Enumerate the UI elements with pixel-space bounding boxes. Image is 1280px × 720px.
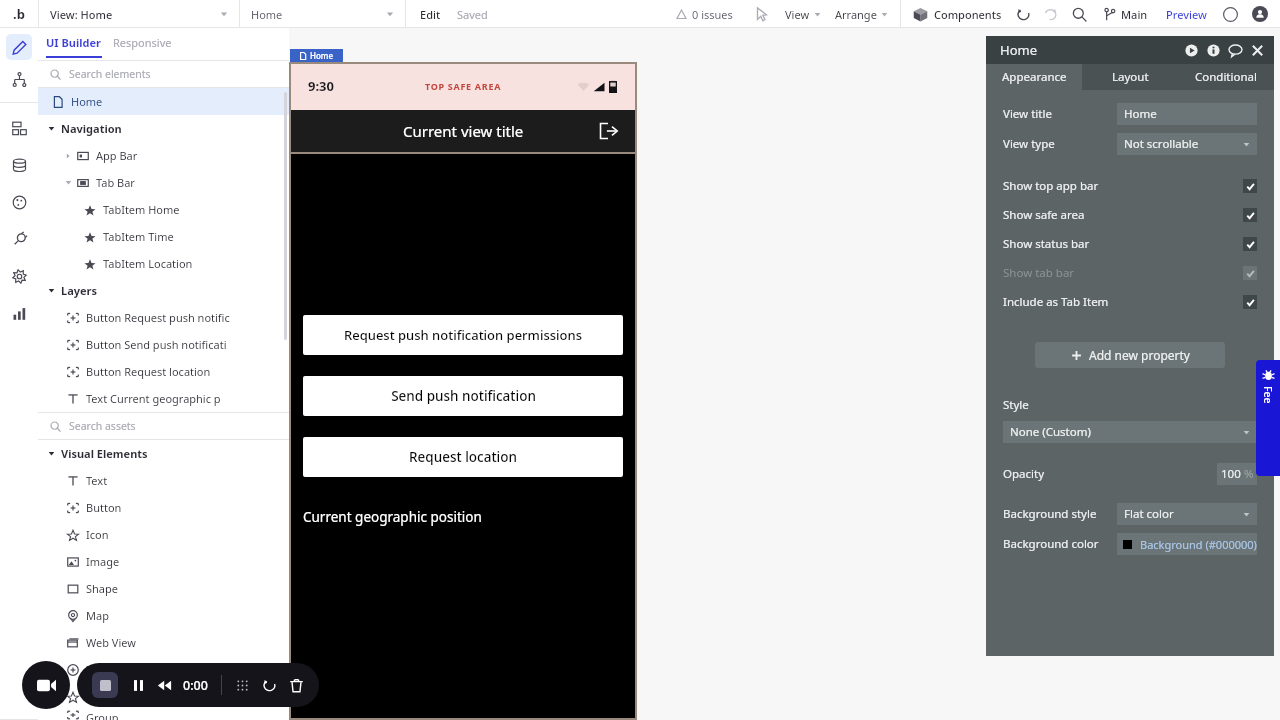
button[interactable]: TabItem Home: [38, 196, 289, 223]
button[interactable]: Responsive: [113, 35, 172, 50]
staticText: Flat color: [1124, 506, 1174, 522]
button[interactable]: Tool: [6, 263, 32, 289]
button[interactable]: None (Custom): [1003, 421, 1257, 443]
button[interactable]: Button Send push notificati: [38, 331, 289, 358]
button[interactable]: TabItem Time: [38, 223, 289, 250]
staticText: TabItem Location: [103, 256, 193, 271]
button[interactable]: 100: [1217, 463, 1257, 485]
button[interactable]: Conditional: [1178, 64, 1274, 90]
button[interactable]: Home: [290, 49, 343, 62]
button[interactable]: Icon: [38, 521, 289, 548]
button[interactable]: View: Home: [39, 0, 239, 28]
button[interactable]: 0 issues: [676, 7, 733, 22]
button[interactable]: Button: [38, 494, 289, 521]
staticText: Home: [71, 94, 103, 109]
button[interactable]: Preview: [1166, 7, 1207, 22]
button[interactable]: Text Current geographic p: [38, 385, 289, 412]
button[interactable]: Grid: [235, 678, 250, 693]
staticText: Button: [86, 500, 122, 515]
button[interactable]: TabItem Location: [38, 250, 289, 277]
button[interactable]: Visual Elements: [48, 440, 289, 467]
button[interactable]: Tool: [6, 189, 32, 215]
button[interactable]: Text: [38, 467, 289, 494]
button[interactable]: Info: [1207, 44, 1220, 57]
staticText: Text Current geographic p: [86, 391, 221, 406]
button[interactable]: View: [785, 7, 821, 22]
button[interactable]: Home: [240, 0, 405, 28]
button[interactable]: Send push notification: [303, 376, 623, 416]
staticText: Include as Tab Item: [1003, 294, 1109, 310]
button[interactable]: Record video: [22, 661, 70, 709]
button[interactable]: Not scrollable: [1117, 133, 1257, 155]
button[interactable]: Pause: [131, 678, 146, 693]
button[interactable]: Cursor: [753, 6, 769, 22]
staticText: Not scrollable: [1124, 136, 1199, 152]
staticText: Background style: [1003, 506, 1097, 522]
button[interactable]: Tool: [6, 152, 32, 178]
button[interactable]: Navigation: [48, 115, 289, 142]
button[interactable]: Components: [934, 7, 1002, 22]
button[interactable]: Layers: [48, 277, 289, 304]
button[interactable]: Show safe area: [1003, 200, 1257, 229]
button[interactable]: Stop: [92, 672, 118, 698]
button[interactable]: Web View: [38, 629, 289, 656]
staticText: Home: [1000, 41, 1037, 59]
staticText: View: [785, 7, 810, 22]
staticText: View type: [1003, 136, 1055, 152]
button[interactable]: Include as Tab Item: [1003, 287, 1257, 316]
button[interactable]: Arrange: [835, 7, 888, 22]
button[interactable]: Delete: [289, 678, 304, 693]
button[interactable]: Button Request push notific: [38, 304, 289, 331]
button[interactable]: Edit: [420, 7, 441, 22]
button[interactable]: Log out: [597, 120, 619, 142]
button[interactable]: Appearance: [986, 64, 1082, 90]
button[interactable]: Tool: [6, 115, 32, 141]
staticText: 9:30: [308, 77, 334, 95]
button[interactable]: Button Request location: [38, 358, 289, 385]
button[interactable]: Layout: [1082, 64, 1178, 90]
button[interactable]: Show status bar: [1003, 229, 1257, 258]
staticText: Feedback: [1261, 386, 1275, 410]
button[interactable]: Tool: [6, 34, 32, 60]
button[interactable]: Flat color: [1117, 503, 1257, 525]
button[interactable]: Rewind: [157, 678, 172, 693]
button[interactable]: Tab Bar: [38, 169, 289, 196]
staticText: %: [1244, 466, 1254, 482]
button[interactable]: Home: [38, 88, 289, 115]
button[interactable]: Show top app bar: [1003, 171, 1257, 200]
staticText: Current geographic position: [303, 508, 482, 526]
button[interactable]: .b: [0, 0, 38, 28]
button[interactable]: Main: [1121, 7, 1148, 22]
button[interactable]: Show tab bar: [1003, 258, 1257, 287]
button[interactable]: Image: [38, 548, 289, 575]
staticText: Appearance: [1002, 69, 1067, 85]
button[interactable]: Shape: [38, 575, 289, 602]
button[interactable]: Play: [1185, 44, 1198, 57]
button[interactable]: Restart: [262, 678, 277, 693]
staticText: 100: [1221, 466, 1241, 482]
button[interactable]: Group: [38, 710, 289, 720]
staticText: Search elements: [69, 67, 151, 81]
button[interactable]: Home: [1117, 103, 1257, 125]
button[interactable]: Tool: [6, 226, 32, 252]
button[interactable]: UI Builder: [46, 35, 101, 50]
button[interactable]: Map: [38, 602, 289, 629]
button[interactable]: Request location: [303, 437, 623, 477]
button[interactable]: Comment: [1229, 44, 1242, 57]
button[interactable]: Help: [1223, 7, 1238, 22]
staticText: Icon: [86, 689, 109, 704]
button[interactable]: Tool: [6, 66, 32, 92]
button[interactable]: Add new property: [1035, 342, 1225, 368]
button[interactable]: Icon: [38, 683, 289, 710]
button[interactable]: Redo: [1043, 7, 1058, 22]
button[interactable]: Install More: [38, 656, 289, 683]
button[interactable]: Request push notification permissions: [303, 315, 623, 355]
button[interactable]: Account: [1252, 6, 1268, 22]
button[interactable]: Background (#000000): [1117, 533, 1257, 555]
button[interactable]: App Bar: [38, 142, 289, 169]
button[interactable]: Undo: [1016, 7, 1031, 22]
button[interactable]: Feedback: [1256, 360, 1280, 476]
button[interactable]: Search: [1072, 7, 1087, 22]
button[interactable]: Close: [1251, 44, 1264, 57]
button[interactable]: Tool: [6, 300, 32, 326]
